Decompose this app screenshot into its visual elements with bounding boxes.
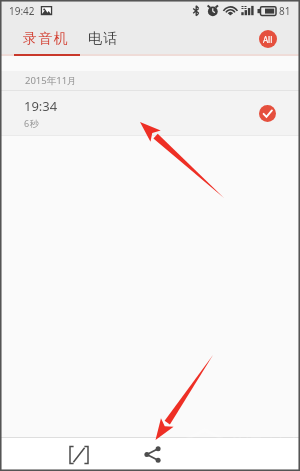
staticText: All [263, 34, 273, 45]
staticText: 6秒 [24, 117, 39, 129]
button[interactable]: Selected [259, 105, 276, 122]
button[interactable]: Trim recording [40, 438, 118, 471]
staticText: 录音机 [23, 30, 69, 48]
button[interactable]: 电话 [88, 30, 119, 48]
staticText: 系统之家 [228, 432, 296, 453]
staticText: 81 [279, 4, 291, 18]
button[interactable]: 19:34 [0, 91, 300, 135]
staticText: 19:42 [9, 4, 35, 18]
staticText: 19:34 [24, 97, 58, 115]
staticText: 电话 [88, 30, 119, 48]
staticText: 2015年11月 [25, 74, 77, 87]
button[interactable]: 录音机 [23, 30, 69, 48]
button[interactable]: All recordings filter [259, 30, 277, 48]
button[interactable]: Share [118, 438, 187, 471]
